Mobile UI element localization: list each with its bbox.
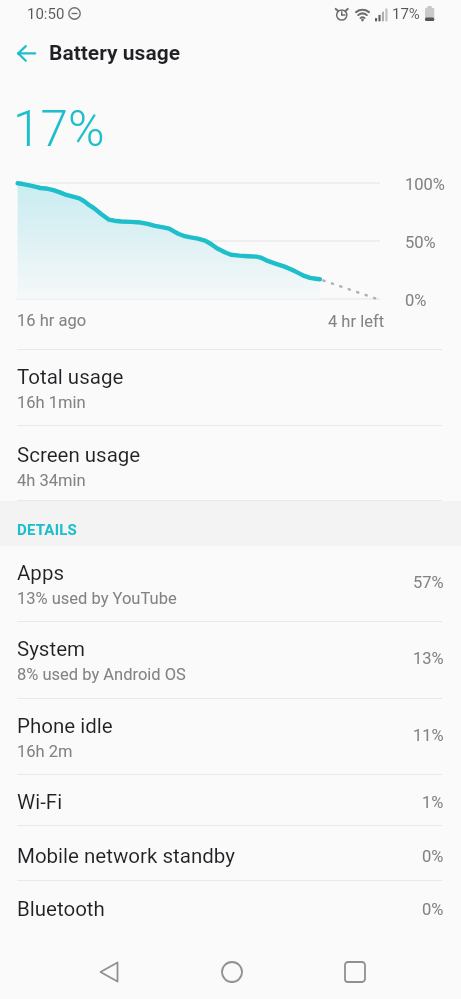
button[interactable]: Back [81, 944, 137, 999]
button[interactable]: System [0, 622, 461, 699]
button[interactable]: Total usage [0, 350, 461, 426]
button[interactable]: Mobile network standby [0, 826, 461, 881]
staticText: Battery usage [49, 41, 181, 66]
staticText: Apps [17, 561, 64, 585]
staticText: Screen usage [17, 443, 141, 467]
staticText: 16h 2m [17, 742, 73, 761]
button[interactable]: Wi-Fi [0, 775, 461, 826]
staticText: 17% [392, 5, 420, 23]
staticText: Wi-Fi [17, 790, 63, 814]
staticText: 16 hr ago [17, 311, 87, 330]
staticText: 0% [422, 900, 444, 919]
staticText: Mobile network standby [17, 844, 235, 868]
staticText: 8% used by Android OS [17, 665, 186, 684]
staticText: 4h 34min [17, 471, 86, 490]
staticText: 16h 1min [17, 393, 86, 412]
button[interactable]: Screen usage [0, 426, 461, 501]
button[interactable]: Home [204, 944, 260, 999]
staticText: 100% [405, 175, 445, 194]
staticText: System [17, 637, 86, 661]
staticText: 57% [413, 573, 444, 592]
staticText: 17% [13, 100, 105, 158]
staticText: DETAILS [17, 521, 77, 539]
staticText: 0% [422, 847, 444, 866]
staticText: 1% [422, 793, 444, 812]
staticText: 0% [405, 291, 427, 310]
staticText: 13% [413, 649, 444, 668]
staticText: Total usage [17, 365, 124, 389]
button[interactable]: Back [2, 30, 50, 78]
button[interactable]: Bluetooth [0, 881, 461, 935]
staticText: 10:50 [27, 5, 65, 23]
staticText: 4 hr left [328, 312, 385, 331]
button[interactable]: Phone idle [0, 699, 461, 775]
staticText: Phone idle [17, 714, 113, 738]
staticText: 13% used by YouTube [17, 589, 177, 608]
button[interactable]: Apps [0, 546, 461, 622]
staticText: 11% [413, 726, 444, 745]
staticText: 50% [405, 233, 436, 252]
staticText: Bluetooth [17, 897, 105, 921]
button[interactable]: Recents [327, 944, 383, 999]
